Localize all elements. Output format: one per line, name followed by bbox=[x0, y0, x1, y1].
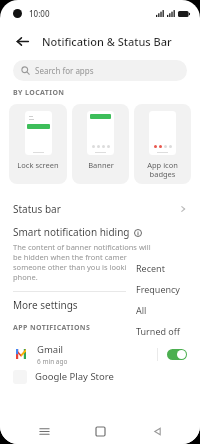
staticText: Search for apps bbox=[35, 65, 94, 76]
button[interactable]: Search for apps bbox=[13, 60, 187, 81]
button[interactable]: Back bbox=[11, 30, 33, 52]
button[interactable]: Information bbox=[133, 228, 142, 237]
button[interactable]: Gmail bbox=[0, 338, 200, 370]
staticText: BY LOCATION bbox=[13, 88, 65, 98]
staticText: The content of banner notifications will… bbox=[13, 242, 159, 282]
staticText: Recent bbox=[136, 262, 165, 274]
button[interactable]: Frequency bbox=[126, 278, 200, 299]
button[interactable]: Lock screen bbox=[9, 104, 67, 184]
staticText: Lock screen bbox=[17, 160, 59, 170]
staticText: RECENT bbox=[147, 323, 178, 333]
staticText: More settings bbox=[13, 298, 78, 312]
button[interactable]: Banner bbox=[72, 104, 129, 184]
staticText: Turned off bbox=[136, 325, 180, 337]
staticText: Banner bbox=[88, 160, 114, 170]
staticText: App icon badges bbox=[147, 160, 178, 179]
button[interactable]: Recent apps bbox=[31, 418, 57, 444]
staticText: Gmail bbox=[37, 343, 64, 356]
staticText: 6 min ago bbox=[37, 357, 68, 366]
button[interactable]: Turned off bbox=[126, 320, 200, 341]
button[interactable]: All bbox=[126, 299, 200, 320]
staticText: Notification & Status Bar bbox=[42, 34, 172, 49]
button[interactable]: RECENT bbox=[147, 323, 187, 333]
staticText: APP NOTIFICATIONS bbox=[13, 323, 91, 333]
staticText: Frequency bbox=[136, 283, 180, 295]
button[interactable]: Status bar bbox=[0, 196, 200, 222]
button[interactable]: More settings bbox=[0, 292, 200, 318]
button[interactable]: Back bbox=[144, 418, 170, 444]
staticText: Google Play Store bbox=[35, 370, 114, 383]
button[interactable]: App icon badges bbox=[134, 104, 191, 184]
staticText: 10:00 bbox=[29, 8, 50, 19]
button[interactable]: Gmail notifications toggle bbox=[167, 349, 187, 360]
staticText: Smart notification hiding bbox=[13, 225, 130, 239]
staticText: All bbox=[136, 304, 147, 316]
button[interactable]: Recent bbox=[126, 257, 200, 278]
staticText: Status bar bbox=[13, 202, 61, 216]
button[interactable]: Home bbox=[87, 418, 113, 444]
button[interactable]: Google Play Store bbox=[0, 370, 200, 386]
